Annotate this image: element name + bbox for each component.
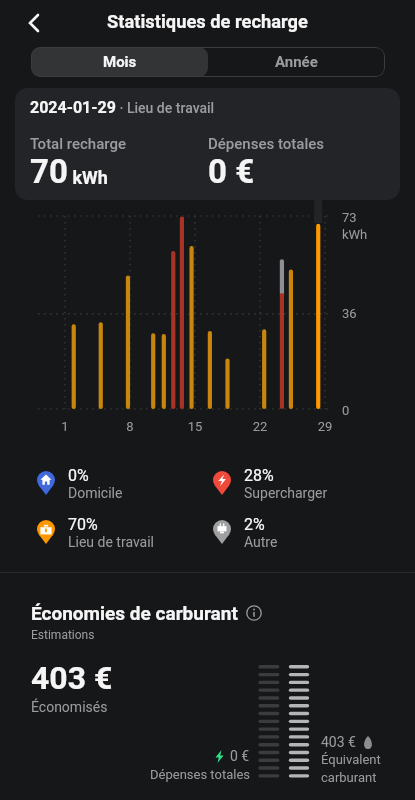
staticText: Dépenses totales bbox=[140, 767, 250, 782]
staticText: Domicile bbox=[68, 485, 123, 501]
staticText: 2024-01-29 bbox=[30, 98, 116, 117]
staticText: 0 € bbox=[230, 748, 250, 764]
staticText: 15 bbox=[175, 419, 215, 434]
staticText: Supercharger bbox=[244, 485, 328, 501]
staticText: kWh bbox=[68, 167, 108, 188]
staticText: 73 bbox=[342, 210, 357, 225]
staticText: 403 € bbox=[31, 659, 113, 697]
button[interactable]: 28% bbox=[213, 465, 378, 501]
staticText: Total recharge bbox=[30, 135, 126, 153]
staticText: kWh bbox=[342, 227, 368, 242]
staticText: 2% bbox=[244, 515, 265, 534]
button[interactable]: 70% bbox=[37, 514, 202, 550]
staticText: Lieu de travail bbox=[68, 534, 155, 550]
staticText: Équivalent carburant bbox=[321, 752, 381, 785]
button[interactable]: Back bbox=[20, 9, 48, 37]
staticText: 70 bbox=[30, 152, 68, 191]
staticText: 22 bbox=[240, 419, 280, 434]
staticText: Estimations bbox=[31, 628, 95, 642]
staticText: Dépenses totales bbox=[208, 135, 325, 153]
button[interactable]: Année bbox=[208, 47, 385, 77]
staticText: 28% bbox=[244, 466, 274, 485]
staticText: 0% bbox=[68, 466, 89, 485]
button[interactable]: Mois bbox=[31, 47, 208, 77]
staticText: 0 € bbox=[208, 152, 255, 191]
staticText: Économisés bbox=[31, 699, 108, 715]
staticText: Autre bbox=[244, 534, 278, 550]
staticText: Mois bbox=[103, 53, 137, 71]
staticText: 0 bbox=[342, 403, 350, 418]
staticText: Statistiques de recharge bbox=[0, 11, 415, 32]
staticText: 70% bbox=[68, 515, 98, 534]
button[interactable]: Info bbox=[246, 605, 262, 621]
button[interactable]: 2% bbox=[213, 514, 378, 550]
button[interactable]: 0% bbox=[37, 465, 202, 501]
staticText: Année bbox=[275, 53, 318, 71]
staticText: Économies de carburant bbox=[31, 602, 238, 624]
staticText: 1 bbox=[45, 419, 85, 434]
staticText: · Lieu de travail bbox=[116, 100, 215, 116]
staticText: 403 € bbox=[321, 734, 356, 750]
staticText: 8 bbox=[110, 419, 150, 434]
staticText: 36 bbox=[342, 306, 357, 321]
staticText: 29 bbox=[305, 419, 345, 434]
